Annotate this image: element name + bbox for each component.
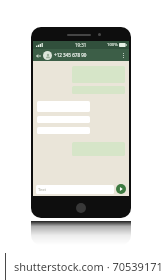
button[interactable]: Home [76, 203, 86, 213]
button[interactable]: Contact photo [43, 51, 52, 60]
button[interactable]: Send [116, 184, 126, 194]
button[interactable]: Back [35, 52, 42, 59]
staticText: +12 345 678 90 [54, 52, 120, 58]
button[interactable]: More options [120, 52, 127, 59]
staticText: Text [38, 187, 47, 193]
staticText: shutterstock.com · 705391711 [14, 259, 161, 274]
button[interactable]: Text [36, 185, 114, 194]
staticText: 19:31 [75, 42, 87, 48]
staticText: 100% [107, 42, 118, 48]
